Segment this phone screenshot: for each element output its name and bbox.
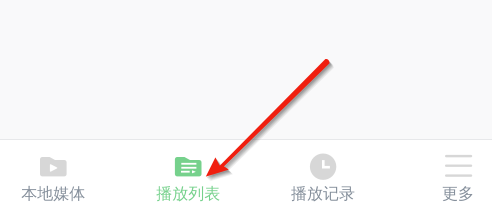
staticText: 播放记录 — [291, 184, 355, 204]
staticText: 本地媒体 — [21, 184, 85, 204]
button[interactable]: 播放记录 — [256, 140, 391, 213]
button[interactable]: 更多 — [391, 140, 492, 213]
staticText: 播放列表 — [156, 184, 220, 204]
button[interactable]: 播放列表 — [121, 140, 256, 213]
button[interactable]: 本地媒体 — [0, 140, 121, 213]
staticText: 更多 — [442, 184, 474, 204]
